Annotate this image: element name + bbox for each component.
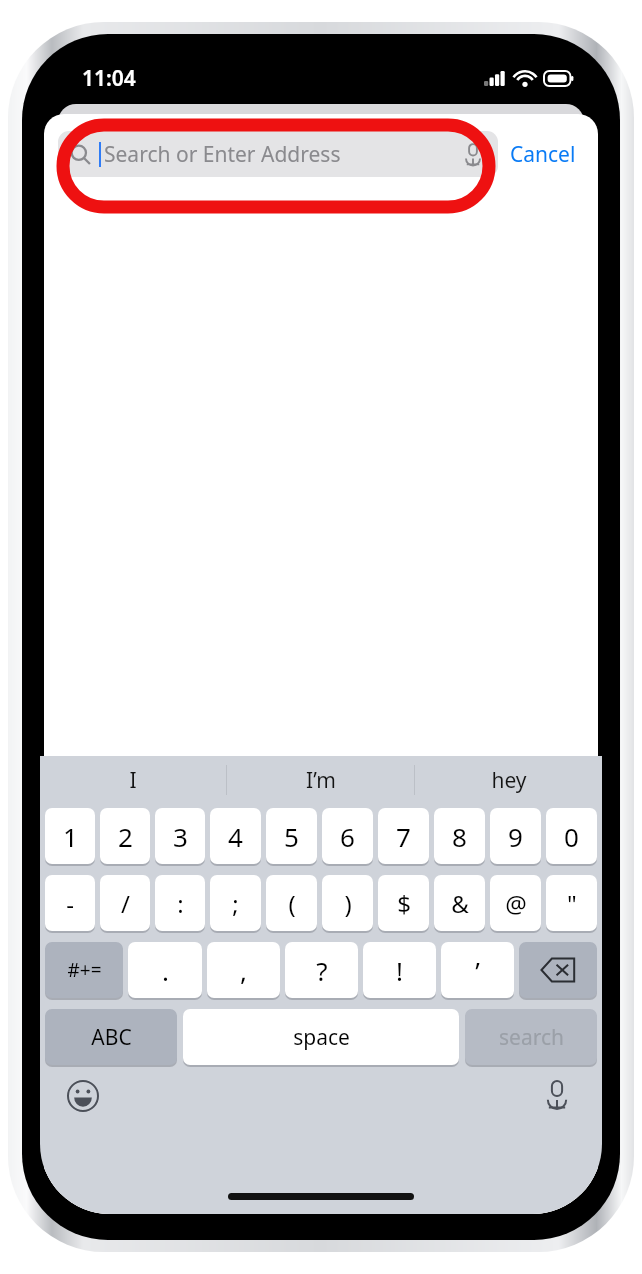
staticText: ( [288,887,296,920]
staticText: / [121,887,130,920]
button[interactable]: Emoji keyboard [66,1079,100,1113]
staticText: 1 [63,819,78,854]
staticText: , [240,953,247,988]
button[interactable]: ! [363,942,436,998]
button[interactable]: ; [210,875,261,931]
button[interactable]: Search or Enter Address [58,131,498,177]
staticText: hey [491,766,527,795]
staticText: . [162,953,169,988]
button[interactable]: & [434,875,485,931]
staticText: ? [316,953,328,988]
button[interactable]: ? [285,942,358,998]
button[interactable]: Cancel [498,131,588,177]
staticText: 5 [284,819,299,854]
button[interactable]: 0 [546,808,597,864]
button[interactable]: Backspace [519,942,597,998]
staticText: ! [396,953,403,988]
button[interactable]: @ [490,875,541,931]
staticText: ) [344,887,352,920]
staticText: space [293,1023,350,1052]
staticText: 7 [396,819,411,854]
staticText: @ [505,887,527,920]
button[interactable]: space [183,1009,459,1065]
staticText: 2 [118,819,133,854]
staticText: & [451,887,469,920]
button[interactable]: 2 [100,808,150,864]
button[interactable]: . [128,942,202,998]
staticText: 3 [173,819,188,854]
button[interactable]: ABC [45,1009,177,1065]
staticText: I [129,766,137,795]
staticText: ABC [91,1023,132,1052]
staticText: " [567,887,577,920]
staticText: : [177,887,184,920]
staticText: Cancel [510,140,576,169]
staticText: 6 [340,819,355,854]
button[interactable]: , [207,942,280,998]
button[interactable]: 1 [45,808,95,864]
button[interactable]: ’ [441,942,514,998]
button[interactable]: 5 [266,808,317,864]
button[interactable]: 6 [322,808,373,864]
button[interactable]: 8 [434,808,485,864]
button[interactable]: 7 [378,808,429,864]
staticText: 4 [228,819,243,854]
button[interactable]: $ [378,875,429,931]
button[interactable]: ( [266,875,317,931]
button[interactable]: 4 [210,808,261,864]
button[interactable]: I’m [227,756,414,804]
staticText: 0 [564,819,579,854]
staticText: ; [232,887,239,920]
button[interactable]: / [100,875,150,931]
staticText: 11:04 [82,64,136,93]
staticText: search [499,1023,564,1052]
button[interactable]: " [546,875,597,931]
button[interactable]: I [40,756,226,804]
staticText: ’ [475,953,480,988]
staticText: I’m [306,766,336,795]
button[interactable]: search [465,1009,597,1065]
button[interactable]: hey [415,756,602,804]
button[interactable]: : [155,875,205,931]
button[interactable]: ) [322,875,373,931]
staticText: #+= [67,957,102,983]
staticText: Search or Enter Address [104,140,341,169]
button[interactable]: - [45,875,95,931]
staticText: 9 [508,819,523,854]
staticText: - [66,887,74,920]
button[interactable]: Dictation [540,1077,574,1111]
button[interactable]: 3 [155,808,205,864]
button[interactable]: #+= [45,942,123,998]
staticText: 8 [452,819,467,854]
staticText: $ [397,887,411,920]
button[interactable]: Voice search [460,141,486,167]
button[interactable]: 9 [490,808,541,864]
